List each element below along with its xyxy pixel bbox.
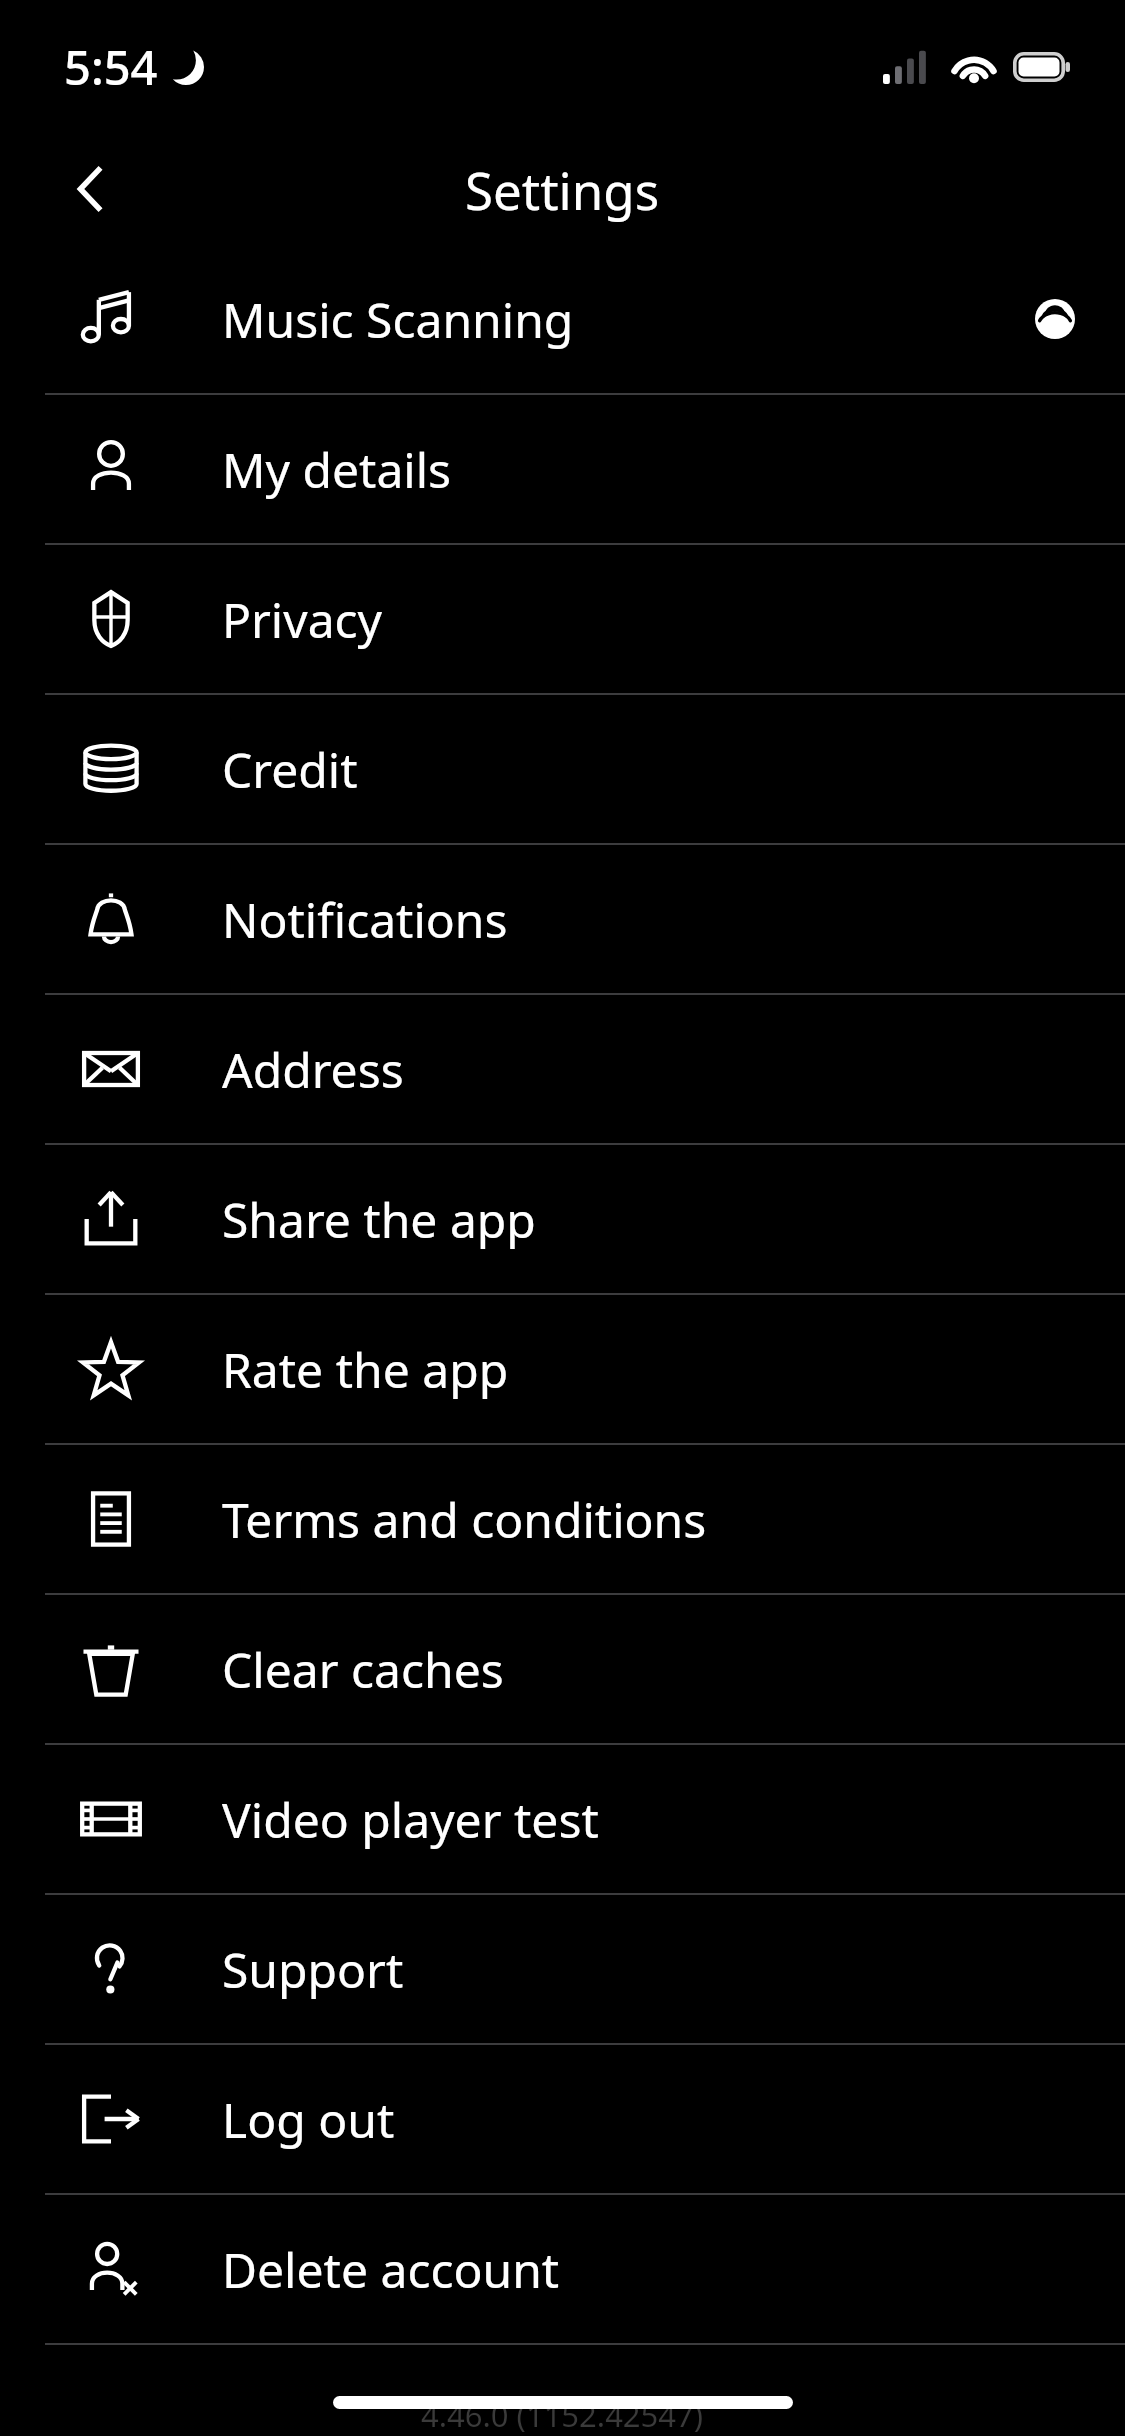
button[interactable]: Rate the app (0, 1295, 1125, 1443)
staticText: Clear caches (222, 1637, 504, 1702)
staticText: Settings (465, 155, 660, 224)
staticText: Support (222, 1937, 404, 2002)
staticText: Terms and conditions (222, 1487, 707, 1552)
staticText: Video player test (222, 1787, 599, 1852)
staticText: 4.46.0 (1152.42547) (421, 2394, 704, 2436)
button[interactable]: Clear caches (0, 1595, 1125, 1743)
staticText: Share the app (222, 1187, 536, 1252)
staticText: Credit (222, 737, 358, 802)
staticText: 5:54 (64, 35, 158, 99)
staticText: My details (222, 437, 452, 502)
staticText: Notifications (222, 887, 508, 952)
button[interactable]: Privacy (0, 545, 1125, 693)
button[interactable]: Log out (0, 2045, 1125, 2193)
button[interactable]: My details (0, 395, 1125, 543)
button[interactable]: Share the app (0, 1145, 1125, 1293)
staticText: Rate the app (222, 1337, 509, 1402)
button[interactable]: Music Scanning (0, 245, 1125, 393)
button[interactable]: Notifications (0, 845, 1125, 993)
button[interactable]: Address (0, 995, 1125, 1143)
staticText: Delete account (222, 2237, 560, 2302)
staticText: Privacy (222, 587, 383, 652)
button[interactable]: Back (50, 149, 130, 229)
button[interactable]: Video player test (0, 1745, 1125, 1893)
button[interactable]: Terms and conditions (0, 1445, 1125, 1593)
staticText: Music Scanning (222, 287, 574, 352)
staticText: Address (222, 1037, 404, 1102)
button[interactable]: Credit (0, 695, 1125, 843)
button[interactable]: Support (0, 1895, 1125, 2043)
button[interactable]: Delete account (0, 2195, 1125, 2343)
staticText: Log out (222, 2087, 395, 2152)
